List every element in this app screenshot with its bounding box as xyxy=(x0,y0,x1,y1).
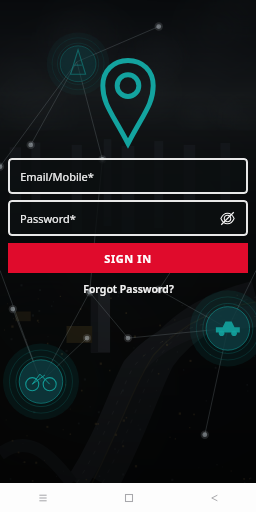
button[interactable]: Back xyxy=(171,483,256,512)
button[interactable]: Home xyxy=(86,483,171,512)
button[interactable]: SIGN IN xyxy=(8,243,248,273)
staticText: Forgot Password? xyxy=(83,282,174,296)
staticText: Email/Mobile* xyxy=(20,169,94,184)
button[interactable]: Forgot Password? xyxy=(75,279,182,299)
staticText: SIGN IN xyxy=(104,251,152,266)
button[interactable]: Recent apps xyxy=(0,483,86,512)
button[interactable]: Email/Mobile* xyxy=(8,158,248,194)
button[interactable]: Show password xyxy=(214,205,240,231)
staticText: Password* xyxy=(20,211,76,226)
button[interactable]: Password* xyxy=(8,200,248,236)
